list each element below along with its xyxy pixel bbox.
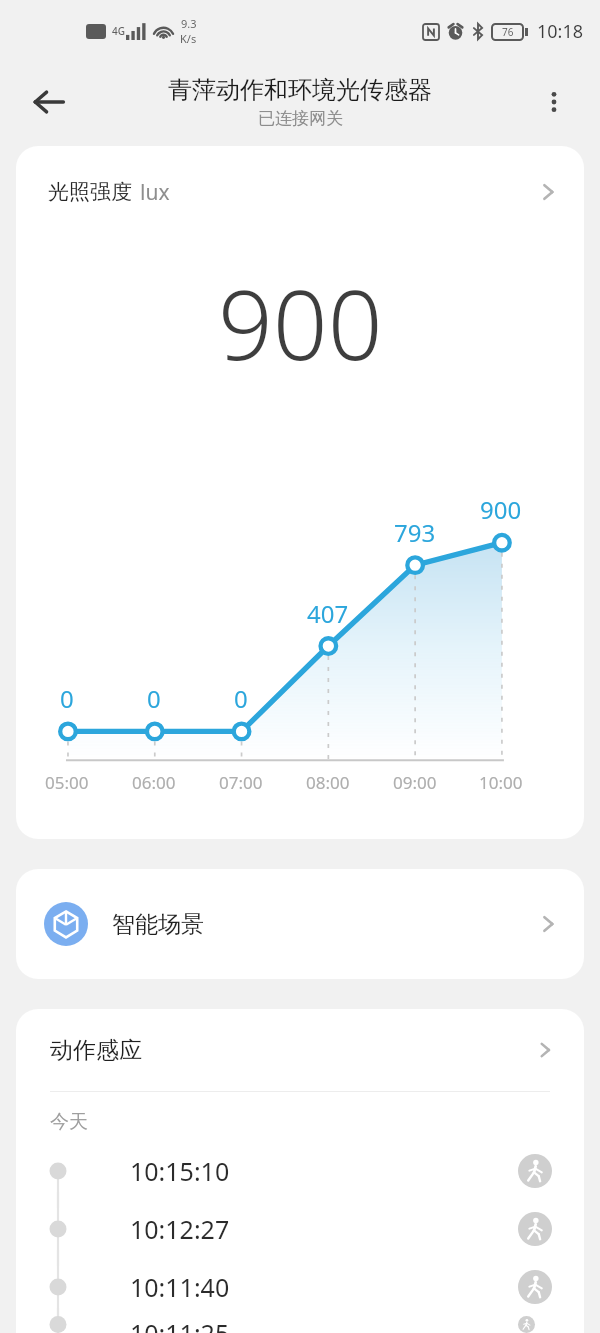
staticText: 0	[234, 682, 248, 715]
staticText: 76	[502, 25, 514, 39]
button[interactable]: More options	[530, 78, 578, 126]
other: Motion detected	[518, 1270, 552, 1304]
staticText: 动作感应	[50, 1036, 142, 1065]
staticText: 智能场景	[112, 910, 204, 939]
staticText: 07:00	[219, 771, 263, 794]
staticText: 06:00	[132, 771, 176, 794]
other: Motion detected	[518, 1212, 552, 1246]
button[interactable]: 10:11:25	[16, 1316, 584, 1333]
staticText: 10:11:25	[130, 1316, 230, 1333]
button[interactable]: 10:15:10	[16, 1142, 584, 1200]
staticText: 10:18	[537, 19, 584, 44]
button[interactable]: 智能场景	[16, 869, 584, 979]
staticText: lux	[140, 178, 170, 207]
staticText: K/s	[180, 31, 197, 46]
button[interactable]: 10:11:40	[16, 1258, 584, 1316]
button[interactable]: 动作感应	[16, 1009, 584, 1091]
staticText: 900	[480, 493, 522, 526]
staticText: 已连接网关	[258, 108, 343, 129]
staticText: 10:12:27	[130, 1212, 230, 1246]
staticText: 10:15:10	[130, 1154, 230, 1188]
staticText: 08:00	[306, 771, 350, 794]
other: Motion detected	[518, 1154, 552, 1188]
staticText: 9.3	[181, 16, 197, 31]
staticText: 今天	[50, 1110, 88, 1134]
staticText: 4G	[112, 24, 125, 38]
staticText: 0	[60, 682, 74, 715]
button[interactable]: 10:12:27	[16, 1200, 584, 1258]
staticText: 05:00	[45, 771, 89, 794]
staticText: 793	[394, 516, 436, 549]
other: Motion detected	[518, 1316, 552, 1333]
button[interactable]: 光照强度	[16, 146, 584, 238]
button[interactable]: Back	[22, 75, 76, 129]
staticText: 09:00	[393, 771, 437, 794]
staticText: 407	[307, 597, 349, 630]
staticText: 10:00	[479, 771, 523, 794]
staticText: 光照强度	[48, 179, 132, 205]
staticText: 青萍动作和环境光传感器	[168, 75, 432, 105]
staticText: 10:11:40	[130, 1270, 230, 1304]
staticText: 900	[218, 257, 383, 388]
staticText: 0	[147, 682, 161, 715]
